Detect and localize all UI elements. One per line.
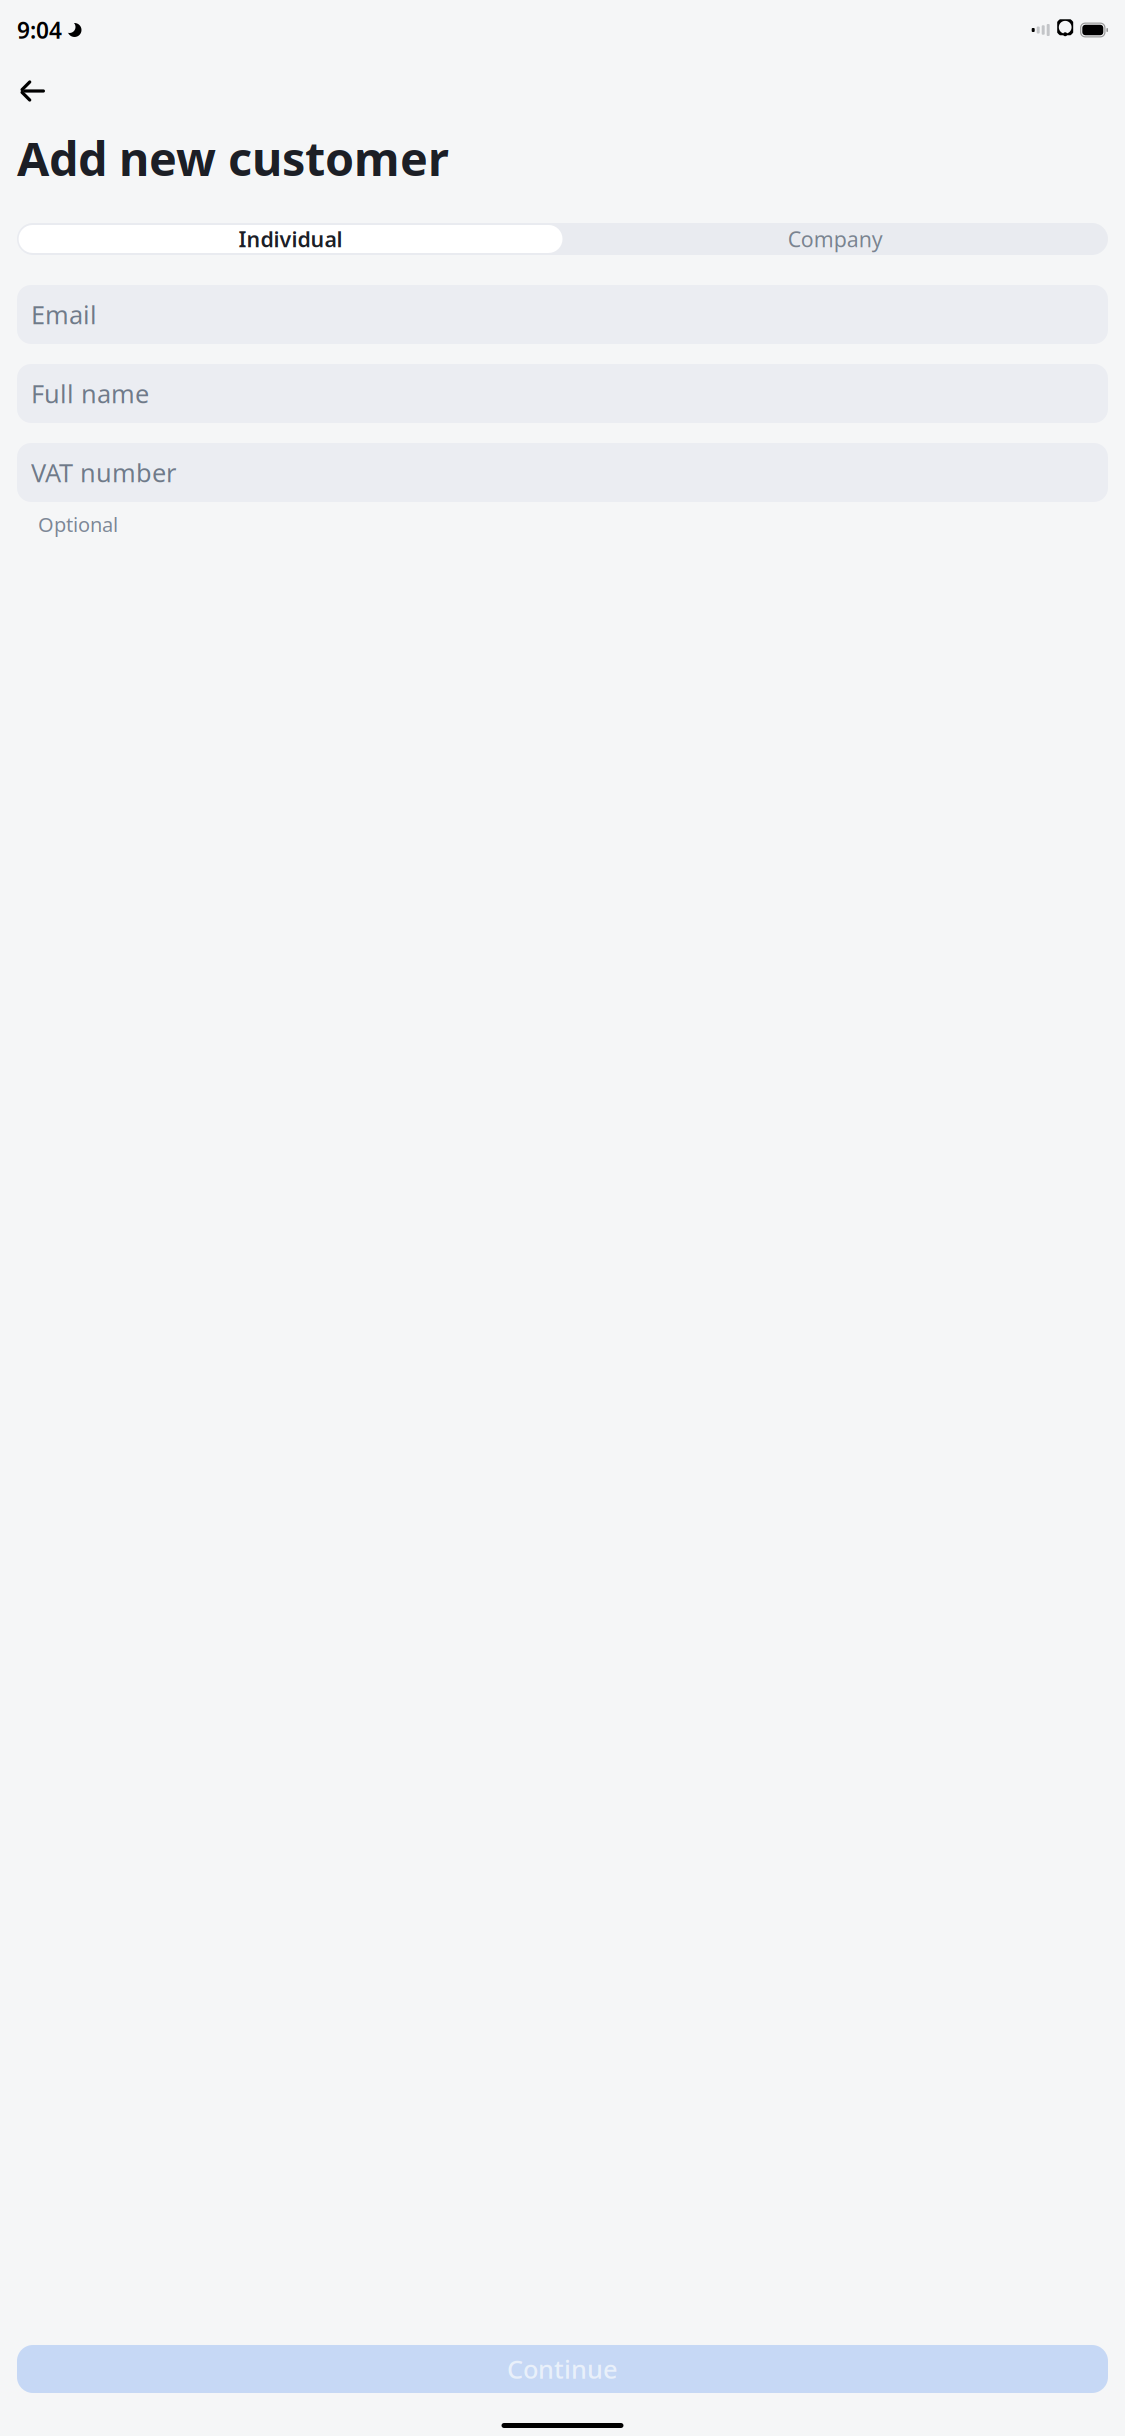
button[interactable]: Continue (17, 2345, 1108, 2393)
button[interactable]: Company (562, 224, 1108, 254)
button[interactable]: VAT number (17, 443, 1108, 502)
staticText: Full name (31, 377, 149, 410)
staticText: Optional (38, 511, 118, 538)
button[interactable]: Individual (17, 223, 562, 255)
button[interactable]: Back (11, 69, 57, 113)
button[interactable]: Email (17, 285, 1108, 344)
staticText: VAT number (31, 456, 176, 489)
staticText: Individual (238, 225, 342, 253)
staticText: Company (788, 225, 883, 253)
staticText: Add new customer (17, 127, 449, 189)
staticText: Continue (507, 2352, 618, 2386)
staticText: 9:04 (17, 15, 62, 45)
staticText: Email (31, 298, 97, 331)
button[interactable]: Full name (17, 364, 1108, 423)
